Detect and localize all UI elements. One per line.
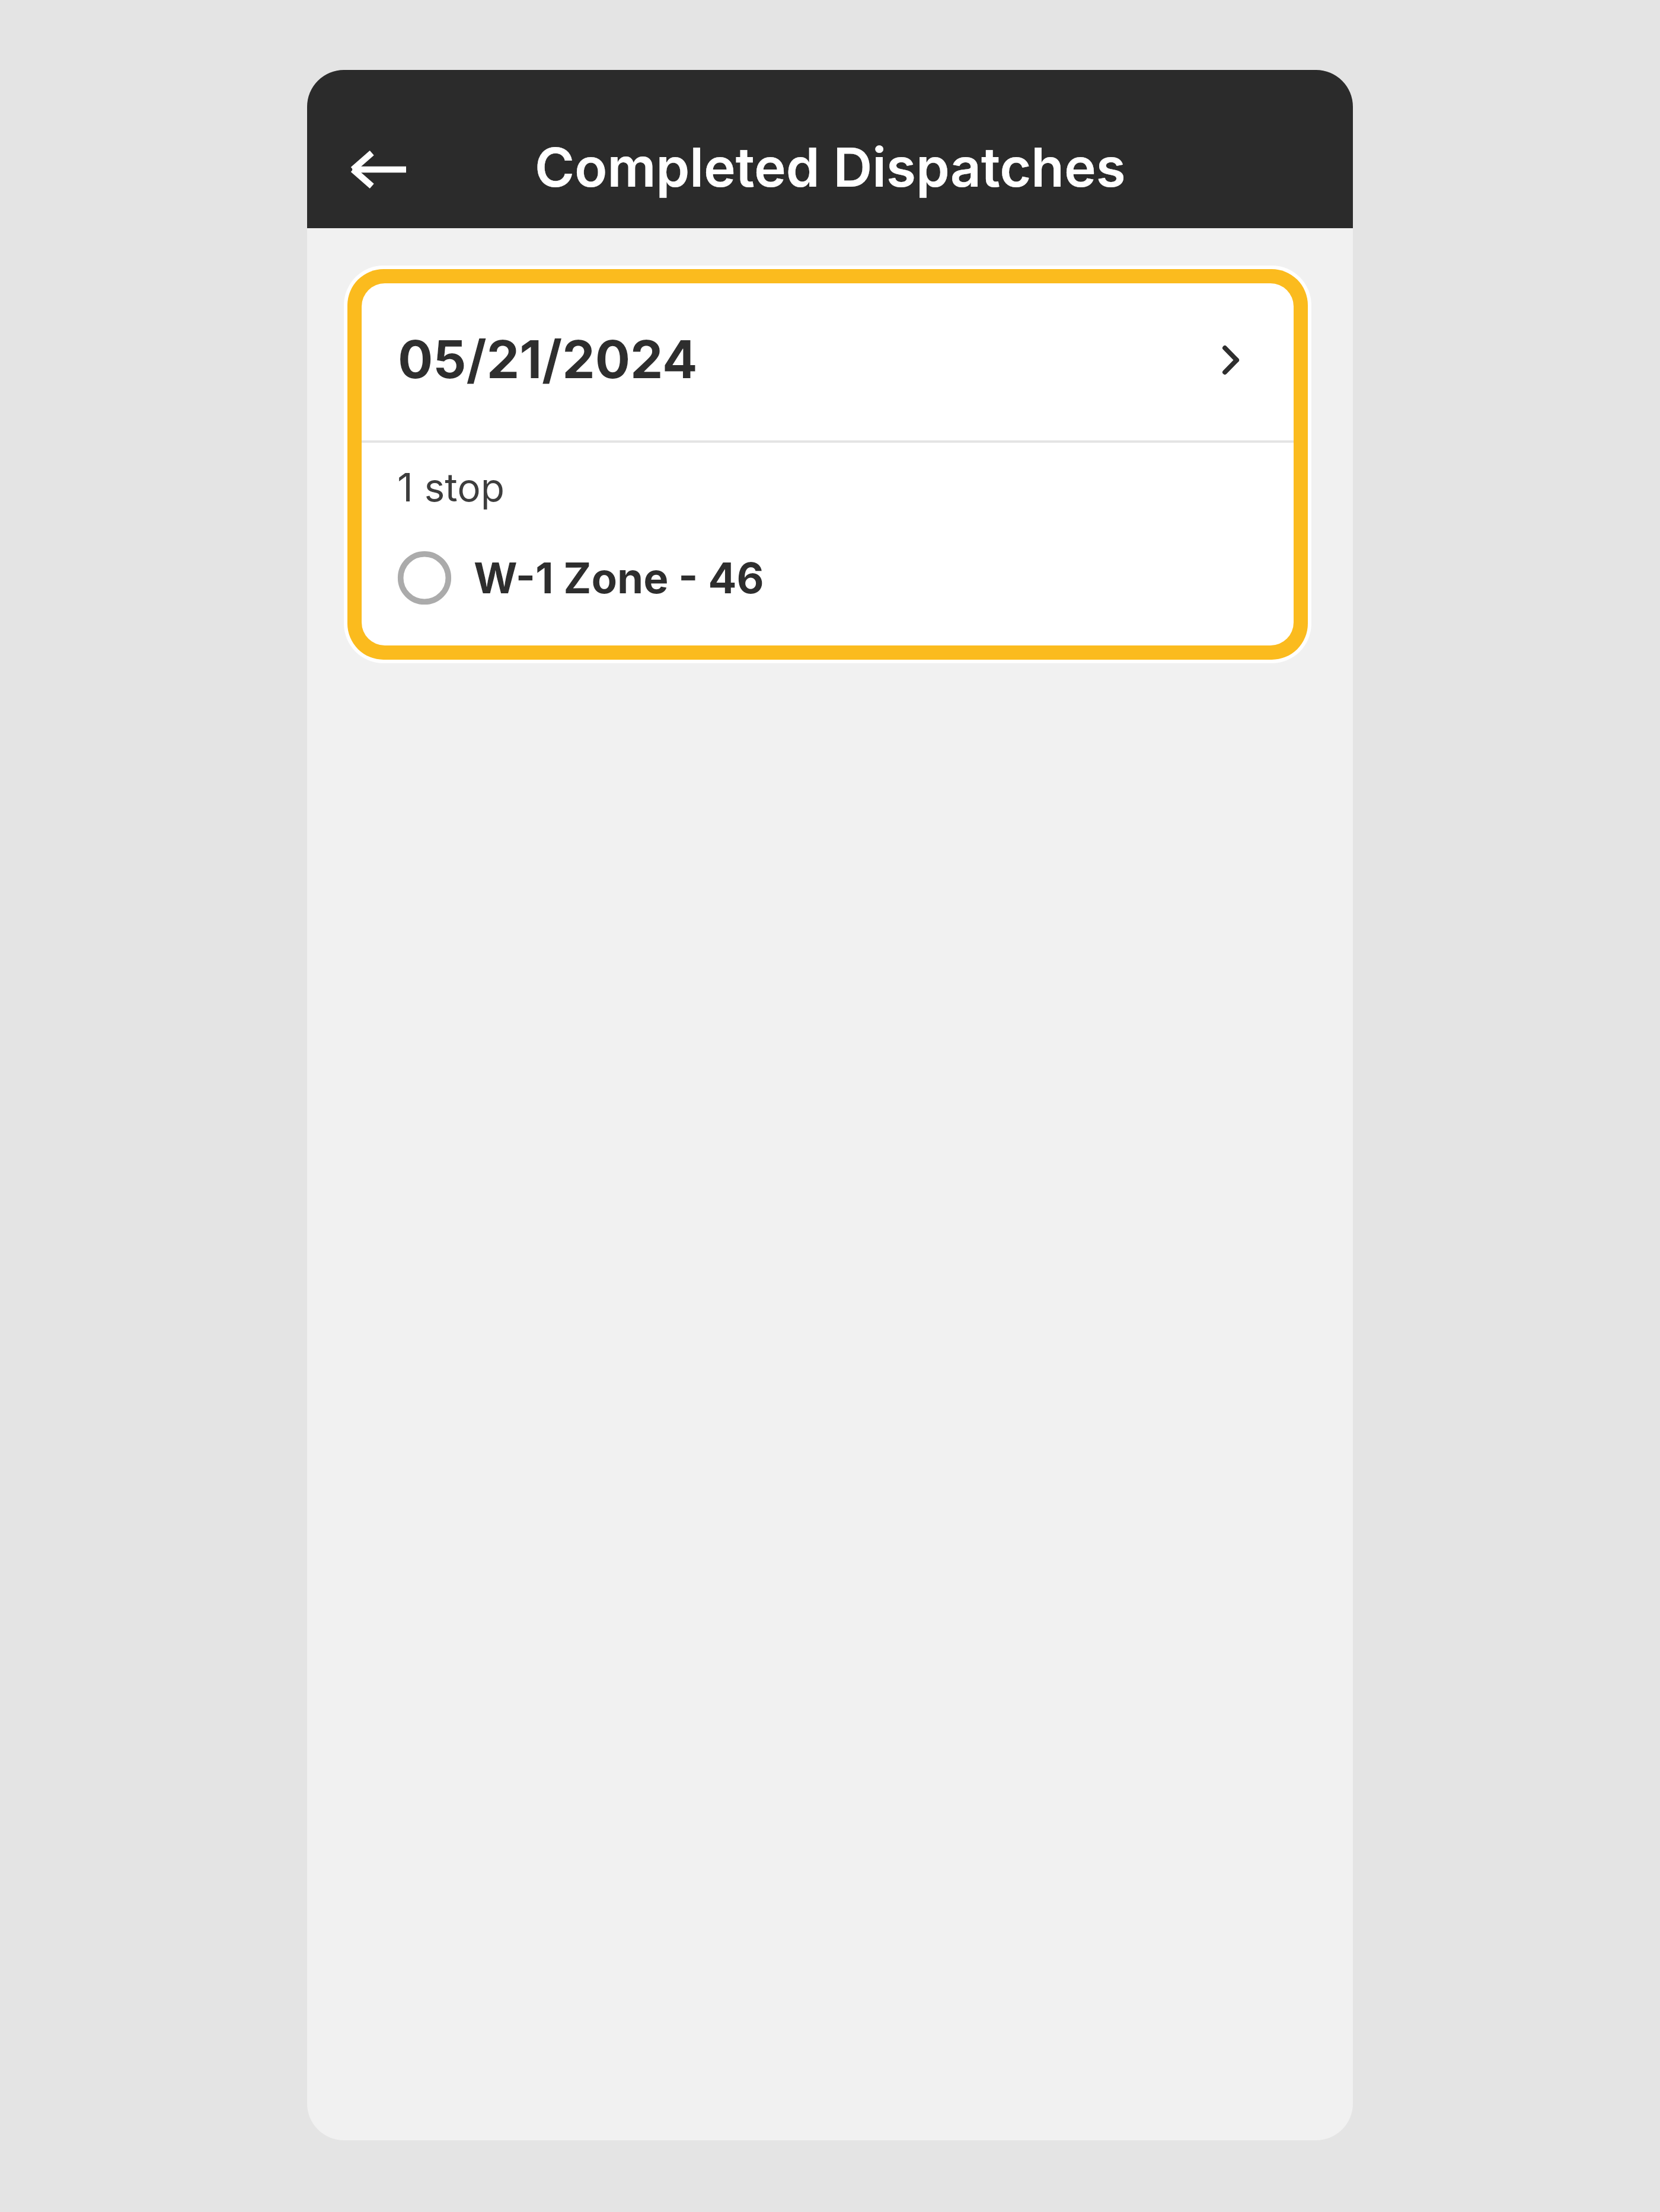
staticText: 1 stop [397, 464, 505, 511]
staticText: Completed Dispatches [535, 135, 1126, 200]
button[interactable]: W-1 Zone - 46 [362, 542, 1294, 613]
staticText: W-1 Zone - 46 [474, 552, 764, 603]
button[interactable]: 05/21/2024 [362, 283, 1294, 440]
button[interactable]: Back [325, 117, 430, 222]
staticText: 05/21/2024 [398, 328, 698, 391]
